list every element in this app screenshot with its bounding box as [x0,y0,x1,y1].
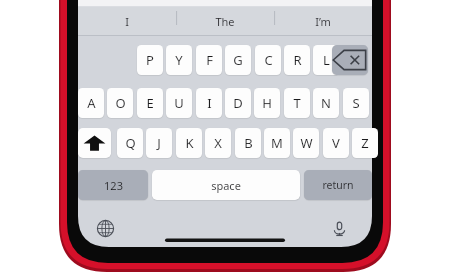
staticText: S [352,94,360,112]
button[interactable]: E [137,88,163,118]
button[interactable]: Dictate [322,212,356,244]
staticText: Z [361,134,369,152]
staticText: L [323,51,330,69]
staticText: I [207,94,212,112]
staticText: return [322,178,354,192]
staticText: 123 [104,178,123,193]
staticText: W [300,134,313,152]
staticText: H [262,94,272,112]
button[interactable]: F [196,45,222,75]
staticText: The [215,14,235,29]
button[interactable]: V [323,128,349,158]
staticText: T [293,94,301,112]
button[interactable]: A [78,88,104,118]
staticText: E [146,94,154,112]
button[interactable]: Backspace [332,45,368,75]
button[interactable]: space [152,170,300,200]
staticText: B [244,134,253,152]
staticText: P [146,51,154,69]
button[interactable]: P [137,45,163,75]
staticText: Q [125,134,136,152]
staticText: U [174,94,184,112]
staticText: V [332,134,340,152]
button[interactable]: M [264,128,290,158]
button[interactable]: J [146,128,172,158]
button[interactable]: Shift [78,128,111,158]
staticText: R [293,51,302,69]
staticText: K [185,134,194,152]
button[interactable]: I [196,88,222,118]
button[interactable]: I [78,8,176,34]
button[interactable]: S [343,88,369,118]
button[interactable]: K [176,128,202,158]
button[interactable]: C [255,45,281,75]
staticText: G [233,51,243,69]
button[interactable]: I’m [274,8,372,34]
button[interactable]: B [235,128,261,158]
button[interactable]: T [284,88,310,118]
button[interactable]: 123 [78,170,148,200]
button[interactable]: Q [117,128,143,158]
staticText: F [206,51,213,69]
button[interactable]: N [313,88,339,118]
button[interactable]: Y [166,45,192,75]
staticText: N [321,94,331,112]
button[interactable]: L [313,45,339,75]
staticText: I [125,14,129,29]
staticText: space [211,178,241,193]
button[interactable]: Z [352,128,378,158]
button[interactable]: Switch keyboard [88,212,122,244]
button[interactable]: The [176,8,274,34]
button[interactable]: return [304,170,372,200]
staticText: Y [175,51,183,69]
button[interactable]: W [293,128,319,158]
staticText: I’m [315,14,331,29]
button[interactable]: D [225,88,251,118]
staticText: C [264,51,273,69]
staticText: D [233,94,243,112]
staticText: O [115,94,126,112]
staticText: X [214,134,222,152]
button[interactable]: R [284,45,310,75]
button[interactable]: U [166,88,192,118]
button[interactable]: X [205,128,231,158]
staticText: J [157,134,161,152]
button[interactable]: G [225,45,251,75]
button[interactable]: H [254,88,280,118]
staticText: A [87,94,96,112]
staticText: M [271,134,283,152]
button[interactable]: O [107,88,133,118]
